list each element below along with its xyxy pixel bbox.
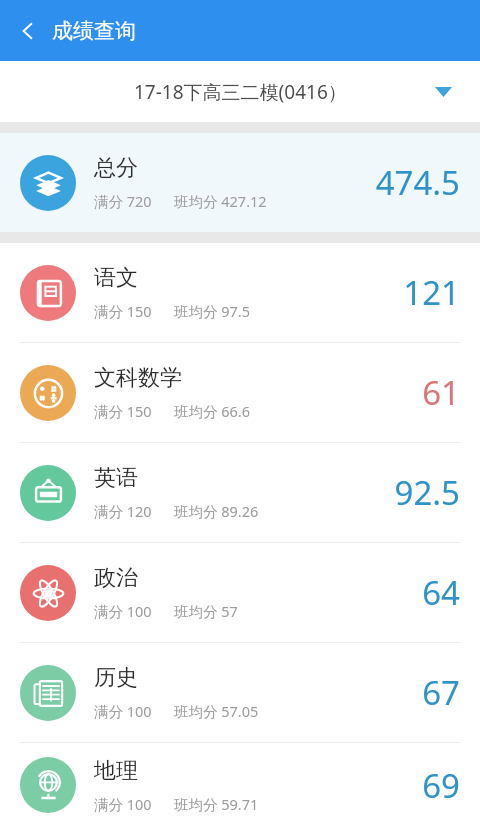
button[interactable]: Back [6, 9, 50, 53]
staticText: 班均分 57.05 [174, 701, 259, 721]
staticText: 64 [422, 570, 460, 615]
staticText: 满分 100 [94, 601, 152, 621]
staticText: 满分 100 [94, 794, 152, 814]
staticText: 69 [422, 763, 460, 808]
staticText: 班均分 59.71 [174, 794, 259, 814]
staticText: 61 [422, 370, 460, 415]
staticText: 92.5 [394, 470, 460, 515]
button[interactable]: 17-18下高三二模(0416） [0, 61, 480, 122]
button[interactable]: 政治 [0, 543, 480, 642]
button[interactable]: 英语 [0, 443, 480, 542]
staticText: 满分 150 [94, 301, 152, 321]
button[interactable]: Select exam [426, 75, 460, 109]
staticText: 121 [403, 270, 460, 315]
staticText: 满分 150 [94, 401, 152, 421]
button[interactable]: 语文 [0, 243, 480, 342]
button[interactable]: 历史 [0, 643, 480, 742]
staticText: 满分 100 [94, 701, 152, 721]
staticText: 满分 120 [94, 501, 152, 521]
staticText: 地理 [94, 757, 138, 785]
staticText: 474.5 [375, 160, 460, 205]
staticText: 语文 [94, 264, 138, 292]
staticText: 政治 [94, 564, 138, 592]
button[interactable]: 地理 [0, 743, 480, 827]
staticText: 班均分 66.6 [174, 401, 251, 421]
staticText: 历史 [94, 664, 138, 692]
staticText: 成绩查询 [52, 18, 136, 44]
button[interactable]: 总分 [0, 133, 480, 232]
staticText: 班均分 97.5 [174, 301, 251, 321]
staticText: 总分 [94, 154, 138, 182]
staticText: 英语 [94, 464, 138, 492]
button[interactable]: 文科数学 [0, 343, 480, 442]
staticText: 17-18下高三二模(0416） [134, 79, 347, 105]
staticText: 班均分 57 [174, 601, 238, 621]
staticText: 班均分 89.26 [174, 501, 259, 521]
staticText: 文科数学 [94, 364, 182, 392]
staticText: 班均分 427.12 [174, 191, 267, 211]
staticText: 67 [422, 670, 460, 715]
staticText: 满分 720 [94, 191, 152, 211]
